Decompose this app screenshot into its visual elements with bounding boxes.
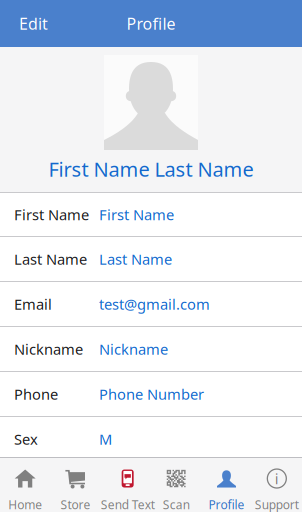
staticText: Support (255, 496, 299, 512)
button[interactable]: Edit (0, 0, 62, 47)
staticText: i (275, 469, 279, 488)
button[interactable]: Scan (151, 456, 201, 512)
staticText: First Name (99, 205, 174, 224)
button[interactable]: First Name (0, 193, 302, 237)
button[interactable]: Send Text (101, 456, 151, 512)
staticText: Email (14, 294, 52, 314)
staticText: Sex (14, 429, 38, 449)
staticText: Store (60, 496, 90, 512)
staticText: First Name Last Name (48, 156, 253, 182)
staticText: Last Name (14, 249, 87, 269)
staticText: Profile (208, 496, 244, 512)
staticText: Phone (14, 384, 58, 404)
button[interactable]: Email (0, 282, 302, 327)
staticText: Nickname (14, 339, 83, 359)
button[interactable]: Nickname (0, 327, 302, 372)
staticText: Nickname (99, 339, 168, 359)
button[interactable]: i (252, 456, 302, 512)
staticText: Scan (163, 496, 190, 512)
staticText: Home (8, 496, 42, 512)
button[interactable]: Last Name (0, 237, 302, 282)
button[interactable]: Profile photo (104, 55, 198, 150)
staticText: First Name (14, 205, 89, 224)
button[interactable]: Sex (0, 417, 302, 462)
staticText: test@gmail.com (99, 294, 210, 314)
staticText: Phone Number (99, 384, 204, 404)
staticText: Send Text (101, 496, 155, 512)
button[interactable]: Store (50, 456, 101, 512)
staticText: M (99, 429, 112, 449)
button[interactable]: Home (0, 456, 50, 512)
button[interactable]: Phone (0, 372, 302, 417)
staticText: Profile (126, 13, 175, 34)
staticText: Last Name (99, 249, 172, 269)
button[interactable]: Profile (201, 456, 252, 512)
staticText: Edit (19, 13, 48, 34)
